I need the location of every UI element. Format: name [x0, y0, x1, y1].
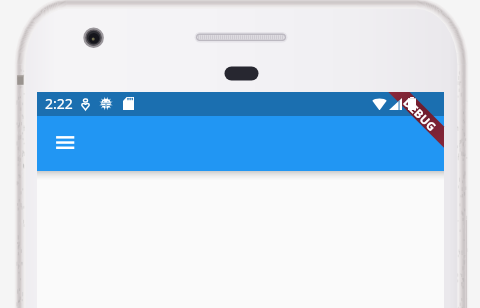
button[interactable]: Open navigation menu [45, 127, 85, 161]
staticText: 2:22 [45, 94, 73, 113]
